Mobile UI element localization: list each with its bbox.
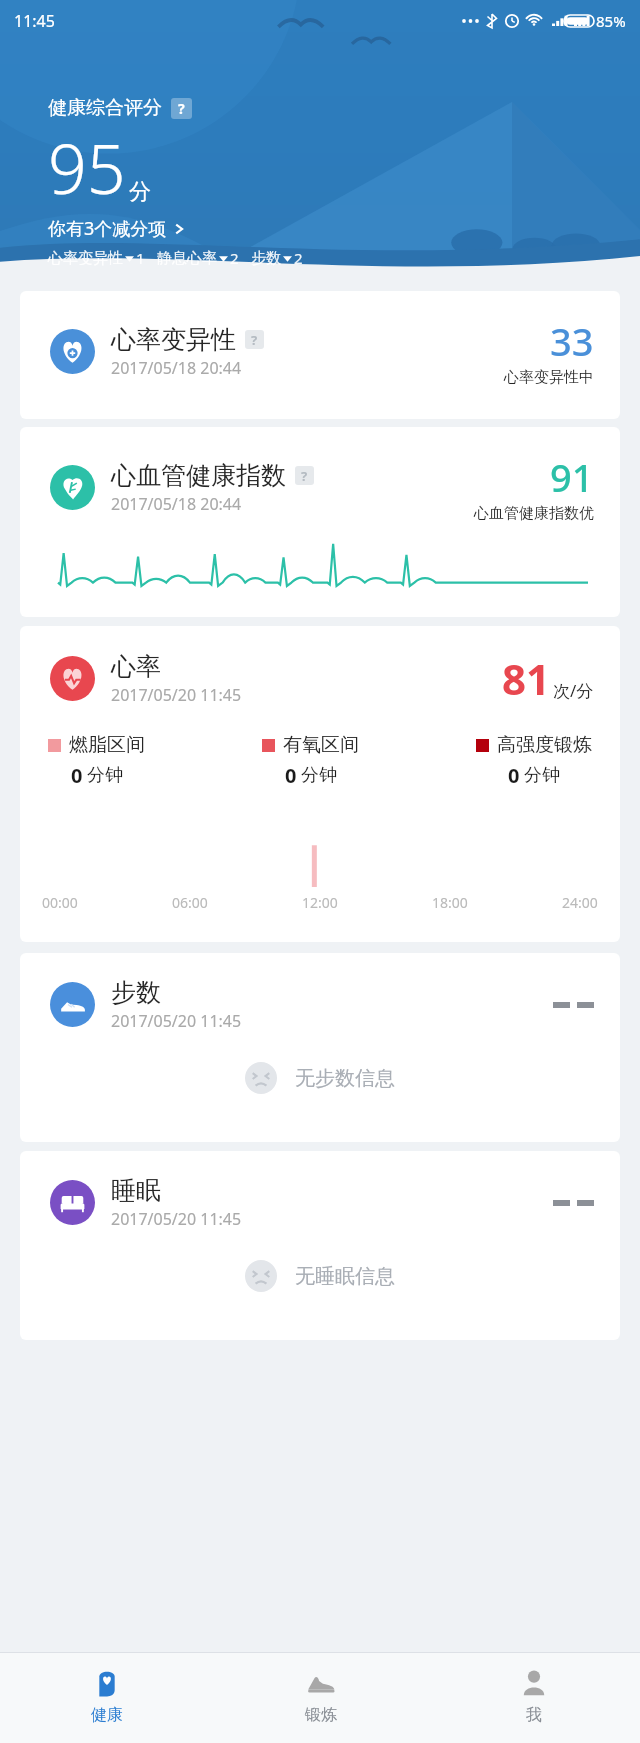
staticText: 分钟 — [301, 764, 337, 787]
button[interactable]: 步数 — [251, 248, 303, 268]
staticText: 心血管健康指数优 — [474, 504, 594, 523]
staticText: 0 — [508, 762, 520, 789]
staticText: 健康综合评分 — [48, 96, 162, 120]
staticText: ? — [251, 331, 258, 349]
button[interactable]: 心血管健康指数 — [20, 427, 620, 617]
button[interactable]: 帮助 — [295, 466, 314, 485]
staticText: 高强度锻炼 — [497, 733, 592, 757]
staticText: 95 — [48, 121, 126, 214]
staticText: 91 — [550, 451, 594, 503]
staticText: 2 — [230, 248, 239, 268]
staticText: 无睡眠信息 — [295, 1264, 395, 1289]
staticText: 11:45 — [14, 10, 55, 32]
staticText: 85% — [596, 11, 626, 31]
button[interactable]: 高强度锻炼 — [476, 733, 592, 789]
staticText: 分钟 — [524, 764, 560, 787]
staticText: ? — [178, 99, 185, 118]
button[interactable]: 心率变异性 — [20, 291, 620, 419]
button[interactable]: 锻炼 — [214, 1653, 427, 1743]
staticText: 2 — [294, 248, 303, 268]
staticText: 2017/05/20 11:45 — [111, 1208, 242, 1230]
staticText: 2017/05/20 11:45 — [111, 1010, 242, 1032]
staticText: 你有3个减分项 — [48, 216, 167, 241]
staticText: 次/分 — [553, 679, 594, 702]
staticText: 燃脂区间 — [69, 733, 145, 757]
staticText: 2017/05/18 20:44 — [111, 357, 242, 379]
button[interactable]: 睡眠 — [20, 1151, 620, 1340]
staticText: 静息心率 — [157, 249, 217, 268]
staticText: 心率变异性 — [111, 324, 236, 355]
staticText: 0 — [71, 762, 83, 789]
button[interactable]: 心率 — [20, 626, 620, 942]
staticText: 我 — [526, 1705, 542, 1725]
staticText: 18:00 — [432, 893, 468, 912]
button[interactable]: 健康 — [0, 1653, 214, 1743]
staticText: 有氧区间 — [283, 733, 359, 757]
staticText: 2017/05/18 20:44 — [111, 493, 242, 515]
staticText: 锻炼 — [305, 1705, 337, 1725]
button[interactable]: 有氧区间 — [262, 733, 359, 789]
button[interactable]: 心率变异性 — [48, 248, 145, 268]
staticText: 06:00 — [172, 893, 208, 912]
staticText: 睡眠 — [111, 1175, 161, 1206]
staticText: 无步数信息 — [295, 1066, 395, 1091]
staticText: 健康 — [91, 1705, 123, 1725]
staticText: 2017/05/20 11:45 — [111, 684, 242, 706]
staticText: 心血管健康指数 — [111, 460, 286, 491]
staticText: 分钟 — [87, 764, 123, 787]
staticText: 24:00 — [562, 893, 598, 912]
button[interactable]: 我 — [427, 1653, 640, 1743]
staticText: 33 — [550, 315, 594, 367]
staticText: 心率变异性 — [48, 249, 123, 268]
button[interactable]: 帮助 — [245, 330, 264, 349]
staticText: ? — [301, 467, 308, 485]
staticText: 步数 — [111, 977, 161, 1008]
staticText: 心率变异性中 — [504, 368, 594, 387]
staticText: 心率 — [111, 651, 161, 682]
button[interactable]: 帮助 — [171, 98, 192, 119]
button[interactable]: 你有3个减分项 — [48, 216, 186, 241]
staticText: 12:00 — [302, 893, 338, 912]
staticText: 00:00 — [42, 893, 78, 912]
button[interactable]: 步数 — [20, 953, 620, 1142]
button[interactable]: 静息心率 — [157, 248, 239, 268]
staticText: 1 — [136, 248, 145, 268]
staticText: 步数 — [251, 249, 281, 268]
button[interactable]: 燃脂区间 — [48, 733, 145, 789]
staticText: 0 — [285, 762, 297, 789]
staticText: 81 — [502, 650, 551, 707]
staticText: 分 — [129, 178, 151, 206]
